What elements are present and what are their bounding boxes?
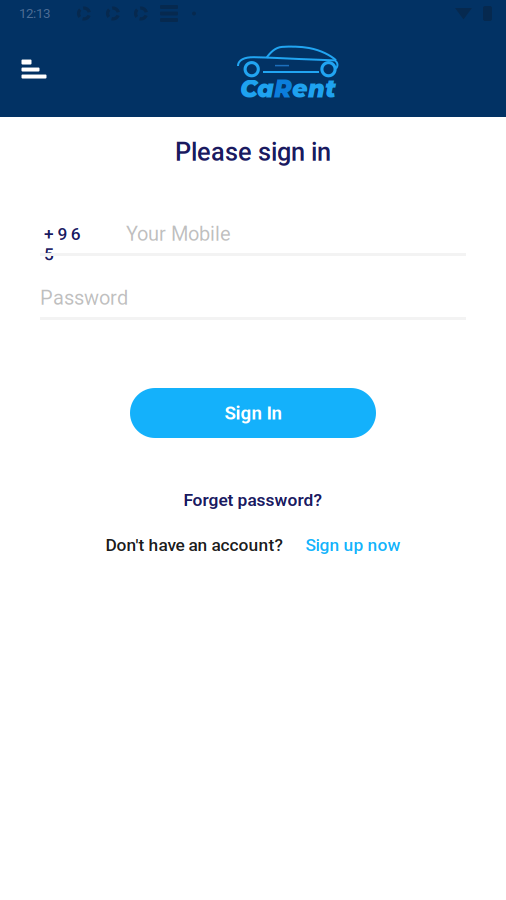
button[interactable]: Forget password? [183,489,322,511]
staticText: ent [292,74,336,104]
button[interactable]: Menu [7,41,61,97]
button[interactable]: Sign In [130,388,376,438]
staticText: Don't have an account? [105,535,282,555]
staticText: Password [40,286,128,310]
staticText: Please sign in [175,137,331,167]
staticText: Sign up now [305,535,400,555]
staticText: R [274,74,292,104]
staticText: Ca [240,74,274,104]
staticText: 12:13 [19,6,50,21]
button[interactable]: Sign up now [305,534,400,556]
staticText: Forget password? [183,490,322,510]
staticText: +965 [44,224,94,244]
staticText: Your Mobile [126,222,231,246]
staticText: Sign In [224,402,281,424]
